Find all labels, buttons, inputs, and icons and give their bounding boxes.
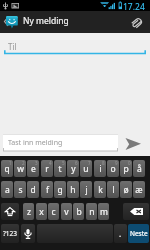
staticText: Tast inn melding: [8, 138, 63, 148]
staticText: b: [76, 206, 82, 218]
button[interactable]: Backspace: [123, 203, 149, 220]
button[interactable]: .: [114, 224, 127, 243]
staticText: ø: [123, 184, 129, 196]
staticText: 5: [62, 160, 65, 166]
staticText: o: [110, 163, 116, 175]
staticText: g: [57, 184, 63, 196]
staticText: 7: [88, 160, 91, 166]
button[interactable]: r: [41, 160, 53, 177]
staticText: u: [83, 163, 89, 175]
button[interactable]: [3, 134, 118, 151]
staticText: c: [51, 206, 56, 218]
button[interactable]: n: [86, 203, 97, 220]
staticText: w: [17, 163, 24, 175]
staticText: y: [71, 163, 76, 175]
staticText: k: [98, 184, 103, 196]
staticText: e: [31, 163, 36, 175]
staticText: 3: [35, 160, 38, 166]
button[interactable]: s: [14, 181, 26, 198]
staticText: m: [100, 206, 108, 218]
staticText: .: [119, 228, 122, 239]
button[interactable]: x: [36, 203, 47, 220]
staticText: 4: [49, 160, 52, 166]
button[interactable]: ?123: [1, 224, 19, 243]
staticText: h: [70, 184, 76, 196]
staticText: a: [5, 184, 10, 196]
button[interactable]: Space: [37, 224, 113, 243]
staticText: ?123: [3, 229, 17, 238]
staticText: æ: [135, 184, 143, 196]
staticText: å: [137, 163, 142, 175]
staticText: i: [99, 163, 102, 175]
staticText: s: [18, 184, 23, 196]
button[interactable]: b: [73, 203, 84, 220]
staticText: Ny melding: [23, 15, 69, 27]
staticText: t: [58, 163, 62, 175]
button[interactable]: d: [27, 181, 39, 198]
button[interactable]: Neste: [128, 224, 149, 243]
button[interactable]: c: [48, 203, 59, 220]
button[interactable]: y: [67, 160, 79, 177]
button[interactable]: u: [80, 160, 92, 177]
staticText: n: [89, 206, 95, 218]
staticText: 2: [22, 160, 25, 166]
staticText: z: [27, 206, 31, 218]
staticText: p: [123, 163, 129, 175]
staticText: 1: [9, 160, 12, 166]
button[interactable]: h: [67, 181, 79, 198]
button[interactable]: w: [14, 160, 26, 177]
staticText: x: [39, 206, 44, 218]
staticText: 9: [115, 160, 118, 166]
button[interactable]: Send: [118, 132, 150, 154]
button[interactable]: å: [133, 160, 145, 177]
button[interactable]: k: [94, 181, 106, 198]
staticText: 0: [128, 160, 131, 166]
staticText: Neste: [130, 229, 148, 238]
button[interactable]: o: [107, 160, 119, 177]
staticText: q: [4, 163, 10, 175]
button[interactable]: v: [61, 203, 72, 220]
button[interactable]: e: [27, 160, 39, 177]
button[interactable]: p: [120, 160, 132, 177]
staticText: d: [30, 184, 36, 196]
button[interactable]: j: [80, 181, 92, 198]
staticText: v: [64, 206, 69, 218]
button[interactable]: m: [98, 203, 109, 220]
staticText: 8: [102, 160, 105, 166]
staticText: f: [46, 184, 49, 196]
button[interactable]: [4, 34, 146, 53]
button[interactable]: l: [107, 181, 119, 198]
staticText: l: [112, 184, 115, 196]
button[interactable]: Attach: [124, 11, 150, 32]
button[interactable]: t: [54, 160, 66, 177]
button[interactable]: æ: [133, 181, 145, 198]
staticText: Til: [8, 41, 17, 52]
button[interactable]: ø: [120, 181, 132, 198]
staticText: 6: [75, 160, 78, 166]
button[interactable]: g: [54, 181, 66, 198]
button[interactable]: q: [1, 160, 13, 177]
button[interactable]: Voice input: [21, 224, 35, 243]
button[interactable]: Back: [0, 11, 42, 32]
staticText: r: [45, 163, 49, 175]
button[interactable]: Shift: [1, 203, 19, 220]
button[interactable]: f: [41, 181, 53, 198]
button[interactable]: z: [23, 203, 34, 220]
button[interactable]: a: [1, 181, 13, 198]
staticText: 17.24: [123, 1, 145, 13]
button[interactable]: i: [94, 160, 106, 177]
staticText: j: [85, 184, 88, 196]
